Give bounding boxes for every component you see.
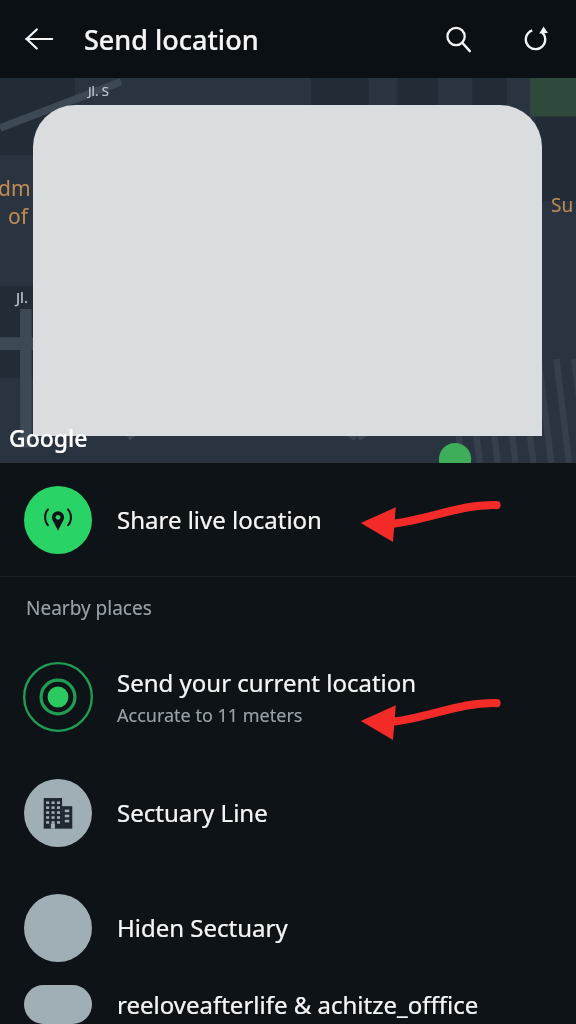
staticText: Nearby places — [26, 595, 152, 621]
staticText: Jl. S — [88, 82, 109, 100]
staticText: Share live location — [117, 503, 322, 536]
staticText: Hiden Sectuary — [117, 911, 288, 944]
staticText: Send your current location — [117, 666, 417, 699]
staticText: of — [8, 202, 28, 231]
button[interactable]: Back — [12, 12, 66, 66]
button[interactable]: Refresh — [508, 12, 562, 66]
button[interactable]: Share live location — [0, 463, 576, 576]
button[interactable]: Search — [431, 12, 485, 66]
staticText: Send location — [84, 21, 259, 58]
button[interactable]: Sectuary Line — [0, 755, 576, 870]
staticText: dm — [0, 174, 31, 203]
button[interactable]: reeloveafterlife & achitze_offfice — [0, 985, 576, 1024]
staticText: Jl. — [16, 287, 28, 307]
staticText: Accurate to 11 meters — [117, 703, 303, 728]
button[interactable]: Send your current location — [0, 639, 576, 755]
staticText: Su — [551, 192, 574, 218]
button[interactable]: Hiden Sectuary — [0, 870, 576, 985]
staticText: reeloveafterlife & achitze_offfice — [117, 988, 479, 1021]
staticText: Sectuary Line — [117, 796, 268, 829]
staticText: Google — [9, 422, 88, 453]
